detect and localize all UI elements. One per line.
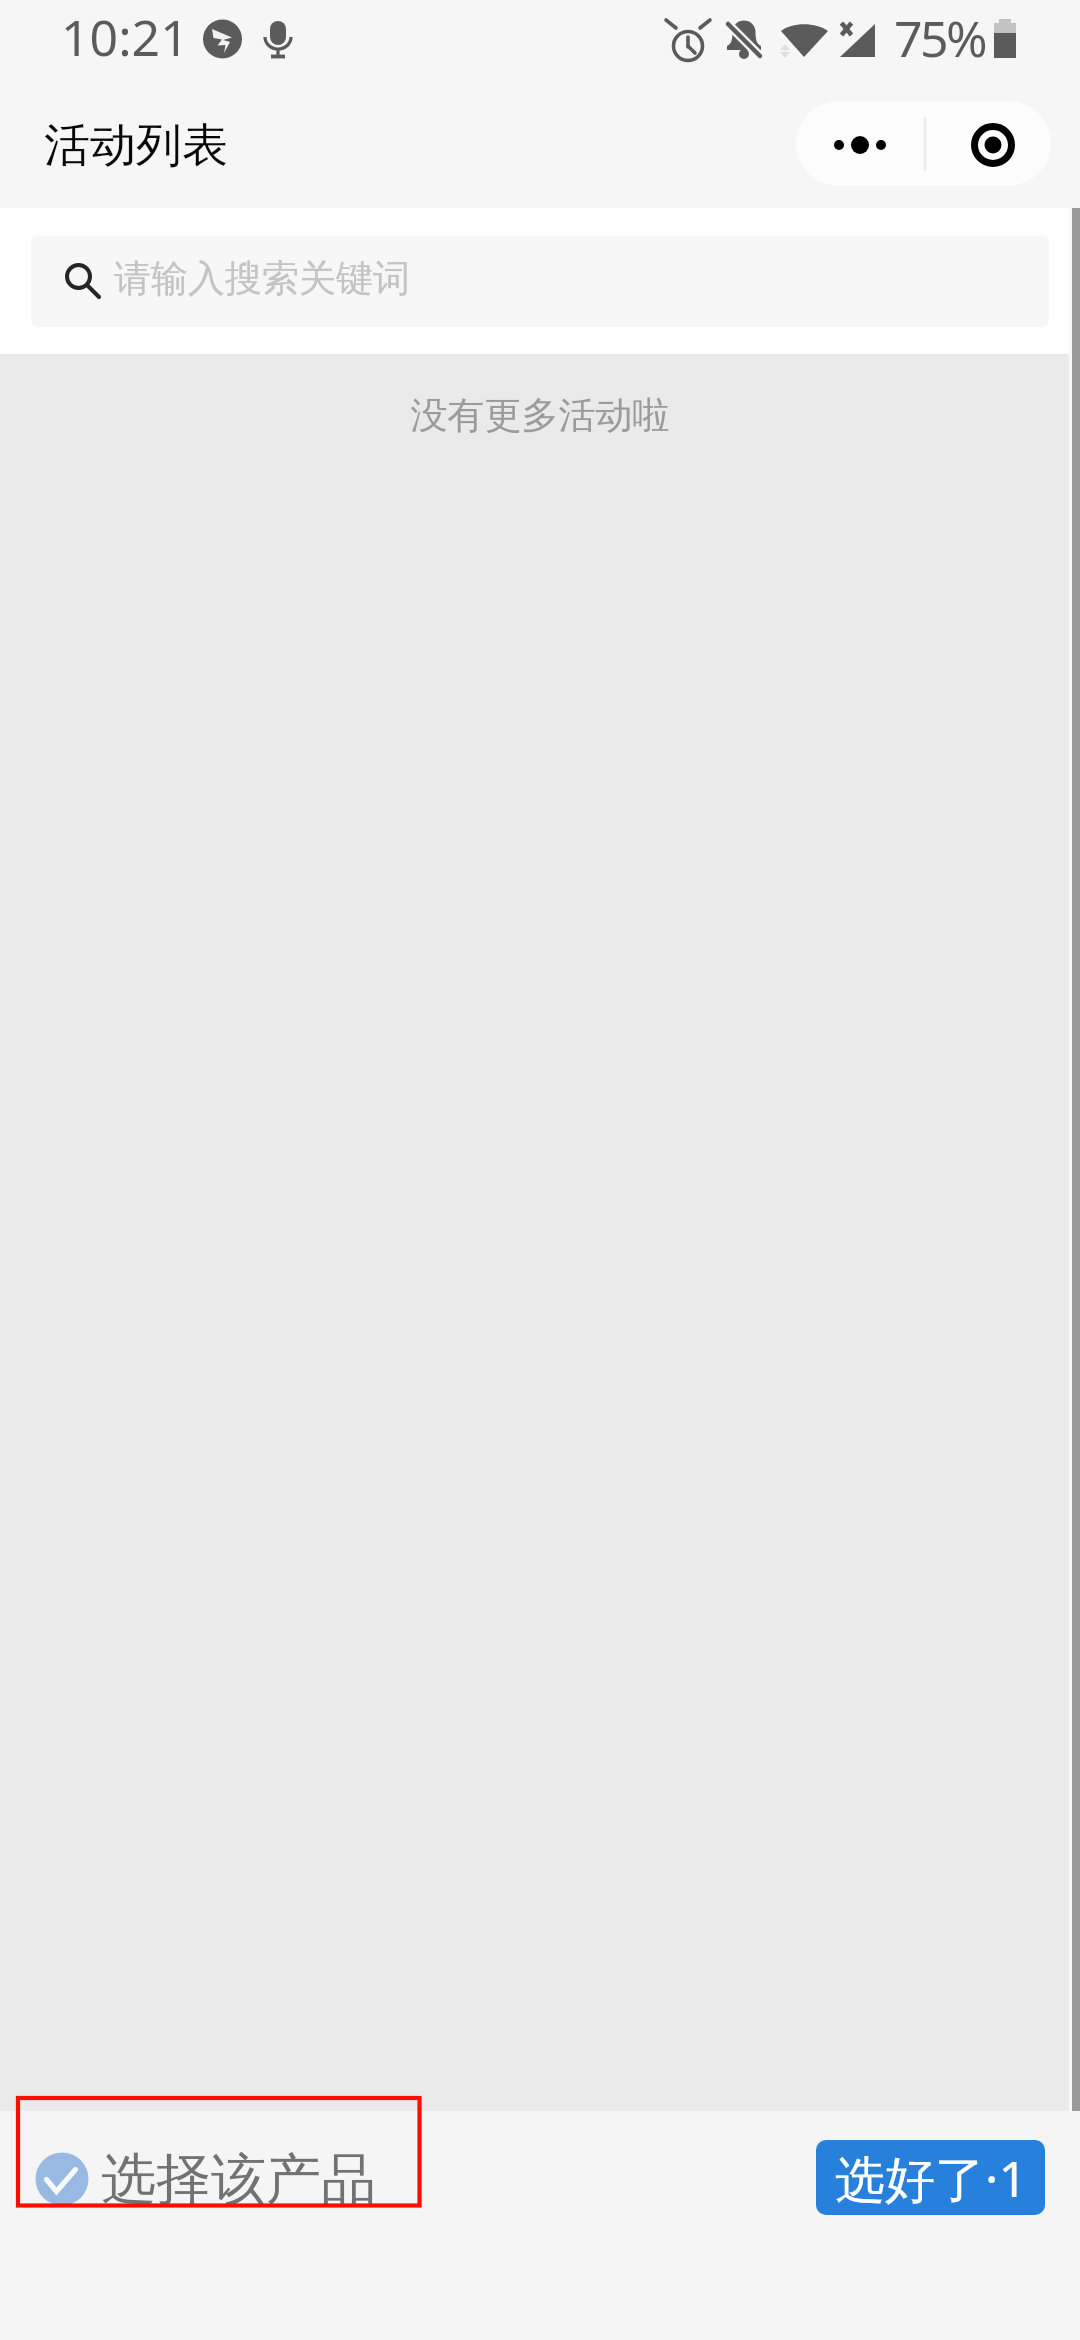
staticText: 活动列表 (44, 117, 228, 175)
staticText: 选择该产品 (101, 2145, 376, 2214)
button[interactable]: 选择该产品 (20, 2127, 376, 2231)
button[interactable]: More options (796, 101, 927, 186)
staticText: 10:21 (61, 3, 189, 71)
button[interactable]: 选好了·1 (816, 2140, 1045, 2215)
staticText: 没有更多活动啦 (0, 392, 1080, 439)
button[interactable]: 请输入搜索关键词 (31, 236, 1049, 327)
staticText: 75% (894, 4, 985, 72)
button[interactable]: Close mini program (927, 101, 1051, 186)
staticText: 请输入搜索关键词 (114, 255, 410, 302)
staticText: 选好了·1 (835, 2144, 1027, 2212)
